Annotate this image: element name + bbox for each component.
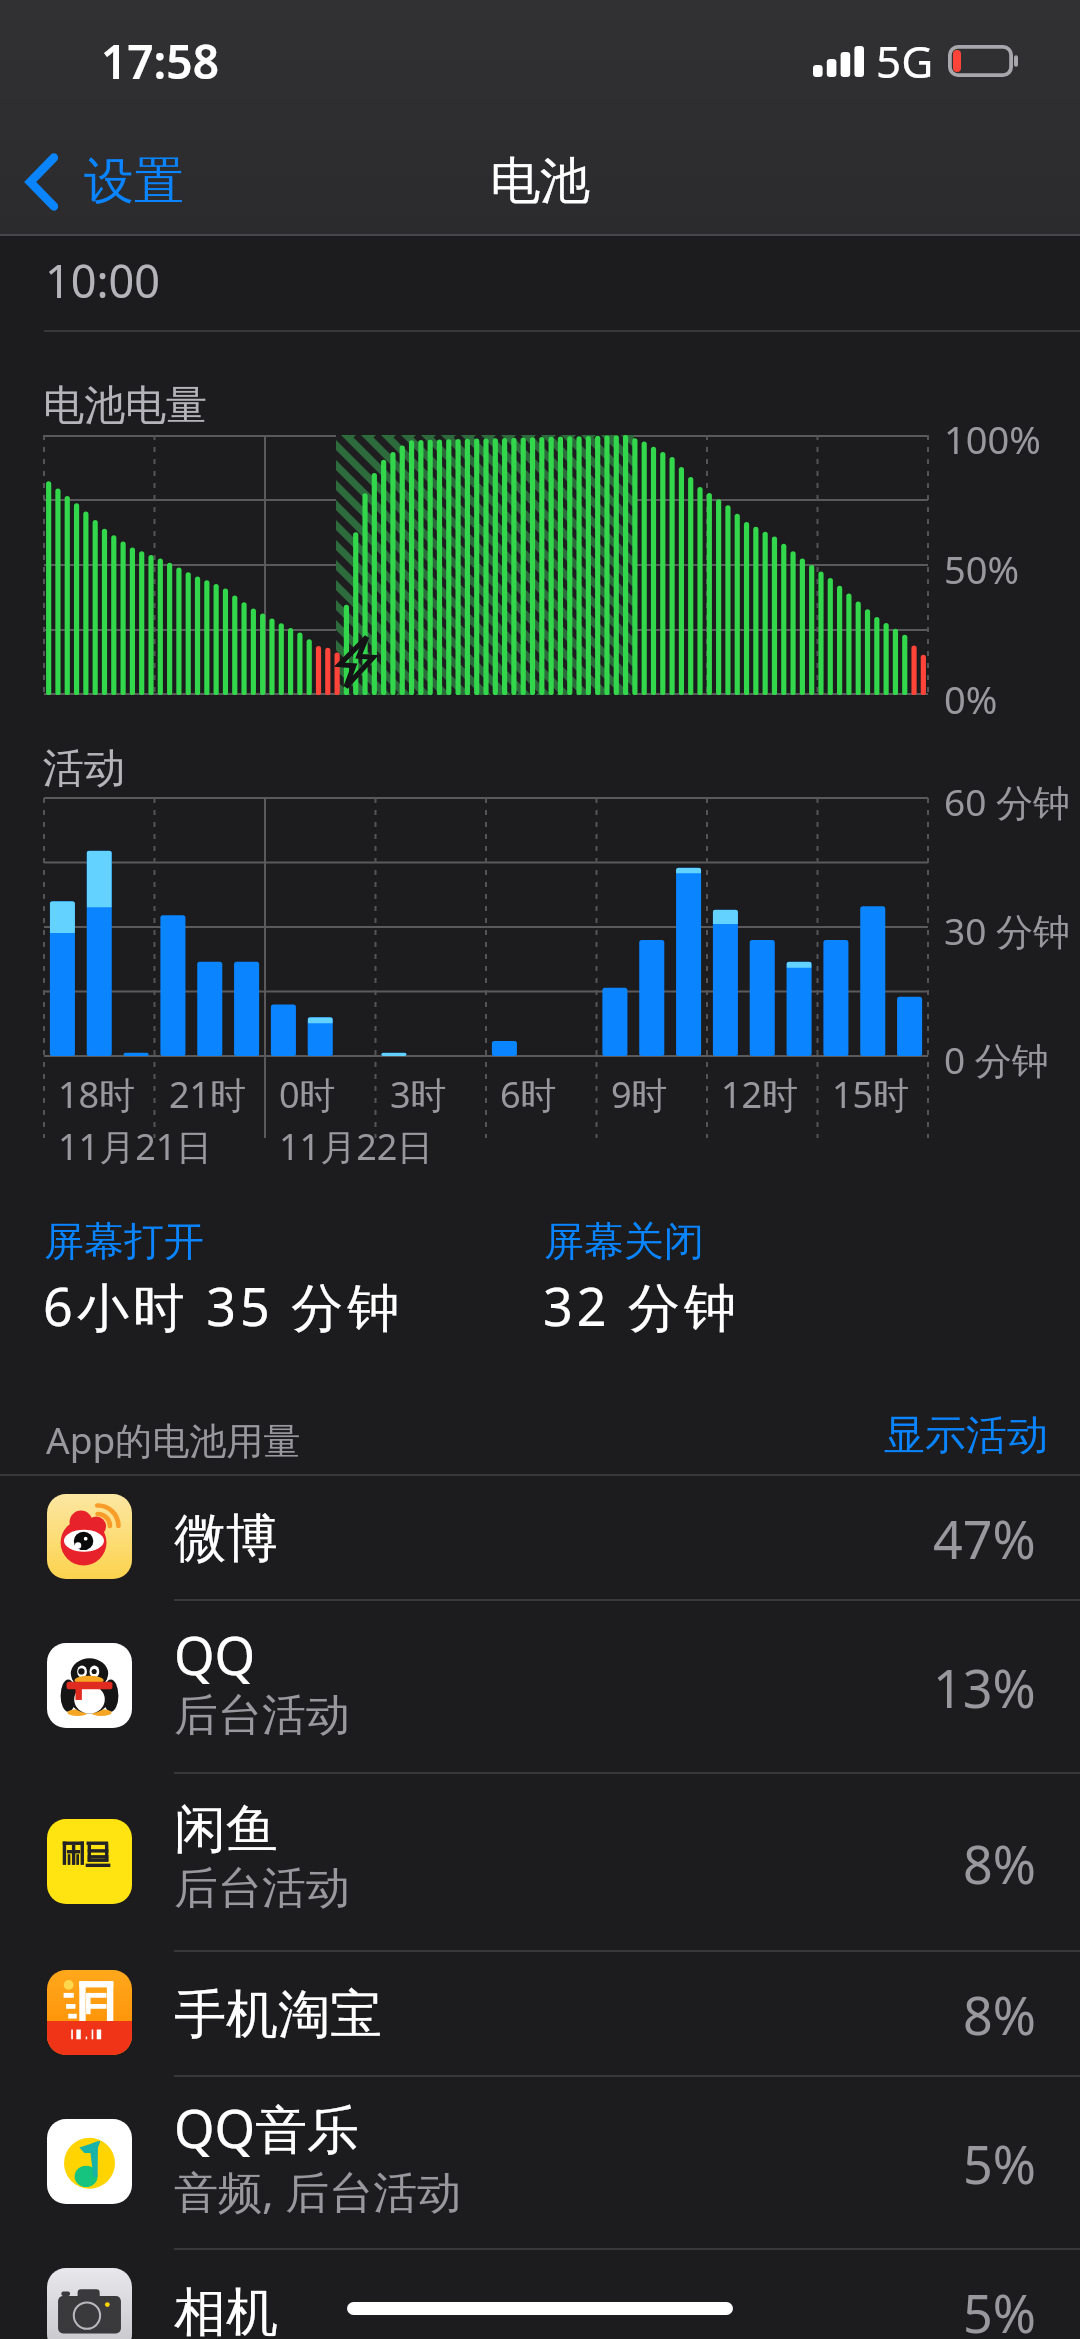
staticText: 18时 — [58, 1070, 136, 1119]
staticText: 5G — [876, 31, 934, 91]
staticText: 3时 — [390, 1070, 447, 1119]
staticText: 电池电量 — [43, 380, 207, 432]
staticText: 13% — [933, 1652, 1036, 1723]
staticText: 音频, 后台活动 — [174, 2161, 462, 2221]
staticText: 11月21日 — [58, 1122, 213, 1171]
staticText: 5% — [963, 2128, 1036, 2199]
staticText: 0 分钟 — [944, 1034, 1049, 1085]
staticText: 电池 — [490, 150, 590, 213]
button[interactable]: QQ — [0, 1601, 1080, 1774]
staticText: 50% — [944, 543, 1020, 595]
staticText: 60 分钟 — [944, 776, 1070, 827]
staticText: 屏幕关闭 — [544, 1216, 704, 1266]
staticText: 100% — [944, 413, 1041, 465]
button[interactable]: QQ音乐 — [0, 2077, 1080, 2250]
button[interactable]: 相机 — [0, 2250, 1080, 2339]
staticText: QQ音乐 — [174, 2092, 360, 2163]
button[interactable]: 闲鱼 — [0, 1774, 1080, 1952]
staticText: 5% — [963, 2277, 1036, 2339]
staticText: 活动 — [43, 743, 125, 795]
button[interactable]: 手机淘宝 — [0, 1952, 1080, 2077]
staticText: 0% — [944, 673, 998, 725]
staticText: 显示活动 — [884, 1410, 1048, 1462]
staticText: 8% — [963, 1979, 1036, 2050]
button[interactable]: 返回设置 — [16, 138, 194, 225]
staticText: 6小时 35 分钟 — [43, 1270, 404, 1341]
staticText: 后台活动 — [174, 1688, 350, 1743]
staticText: 30 分钟 — [944, 905, 1070, 956]
staticText: 6时 — [500, 1070, 557, 1119]
staticText: 手机淘宝 — [174, 1982, 382, 2048]
staticText: 屏幕打开 — [44, 1216, 204, 1266]
staticText: 11月22日 — [279, 1122, 434, 1171]
staticText: 10:00 — [45, 250, 161, 311]
staticText: 0时 — [279, 1070, 336, 1119]
staticText: 相机 — [174, 2280, 278, 2339]
staticText: 17:58 — [101, 30, 219, 93]
staticText: 12时 — [721, 1070, 799, 1119]
staticText: 47% — [933, 1503, 1036, 1574]
staticText: 微博 — [174, 1506, 278, 1572]
staticText: 21时 — [169, 1070, 247, 1119]
staticText: App的电池用量 — [46, 1414, 301, 1465]
button[interactable]: 10:00 — [0, 236, 1080, 330]
button[interactable]: 显示活动 — [874, 1398, 1058, 1474]
staticText: 9时 — [611, 1070, 668, 1119]
staticText: 设置 — [84, 150, 184, 213]
staticText: 8% — [963, 1828, 1036, 1899]
staticText: 15时 — [832, 1070, 910, 1119]
staticText: 闲鱼 — [174, 1797, 278, 1863]
staticText: 32 分钟 — [543, 1270, 741, 1341]
staticText: 后台活动 — [174, 1861, 350, 1916]
button[interactable]: 微博 — [0, 1476, 1080, 1601]
staticText: QQ — [174, 1619, 256, 1690]
